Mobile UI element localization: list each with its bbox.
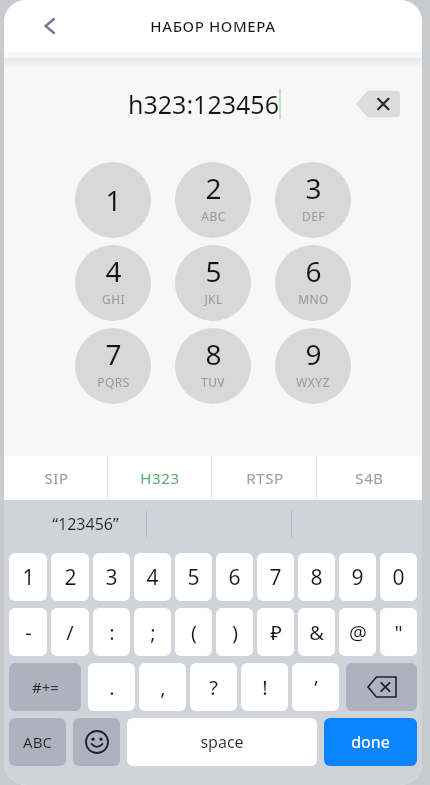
staticText: 4 (105, 252, 122, 290)
button[interactable]: H323 (108, 456, 212, 500)
button[interactable]: ? (190, 663, 237, 711)
staticText: h323:123456 (128, 87, 279, 121)
staticText: JKL (204, 291, 223, 307)
button[interactable]: RTSP (212, 456, 317, 500)
staticText: 6 (305, 252, 322, 290)
staticText: & (309, 619, 324, 646)
staticText: 9 (305, 335, 322, 373)
button[interactable]: ; (134, 608, 171, 656)
button[interactable]: #+= (9, 663, 81, 711)
button[interactable]: & (298, 608, 335, 656)
button[interactable]: 6 (275, 245, 351, 321)
button[interactable]: " (380, 608, 417, 656)
button[interactable]: 8 (298, 553, 335, 601)
staticText: " (394, 619, 403, 646)
staticText: done (351, 731, 390, 753)
staticText: 1 (105, 181, 122, 219)
staticText: TUV (201, 374, 225, 390)
button[interactable]: 8 (175, 328, 251, 404)
staticText: ) (232, 619, 238, 646)
staticText: ABC (201, 208, 226, 224)
button[interactable]: ! (241, 663, 288, 711)
button[interactable]: 3 (93, 553, 130, 601)
staticText: ; (150, 619, 156, 646)
button[interactable]: 4 (134, 553, 171, 601)
button[interactable]: 7 (257, 553, 294, 601)
staticText: 5 (187, 563, 200, 592)
staticText: 7 (269, 563, 282, 592)
button[interactable]: 7 (75, 328, 151, 404)
staticText: - (25, 619, 32, 646)
staticText: WXYZ (296, 374, 330, 390)
button[interactable]: Emoji (73, 718, 120, 766)
staticText: 3 (305, 169, 322, 207)
button[interactable]: 3 (275, 162, 351, 238)
staticText: H323 (140, 468, 180, 488)
staticText: 3 (105, 563, 118, 592)
staticText: #+= (32, 677, 59, 697)
staticText: 8 (310, 563, 323, 592)
staticText: 7 (105, 335, 122, 373)
staticText: 9 (351, 563, 364, 592)
staticText: 6 (228, 563, 241, 592)
button[interactable]: 1 (75, 162, 151, 238)
staticText: MNO (298, 291, 329, 307)
staticText: RTSP (246, 468, 284, 488)
button[interactable]: ABC (9, 718, 66, 766)
staticText: ’ (314, 674, 318, 701)
button[interactable]: , (139, 663, 186, 711)
staticText: : (109, 619, 115, 646)
button[interactable]: ) (216, 608, 253, 656)
button[interactable]: S4B (317, 456, 422, 500)
staticText: space (200, 731, 244, 753)
button[interactable]: ’ (292, 663, 339, 711)
button[interactable]: ( (175, 608, 212, 656)
button[interactable]: 5 (175, 245, 251, 321)
staticText: “123456” (52, 513, 119, 535)
button[interactable]: Clear (356, 89, 400, 119)
button[interactable]: / (51, 608, 89, 656)
staticText: 2 (64, 563, 77, 592)
staticText: S4B (355, 468, 384, 488)
staticText: @ (349, 619, 367, 646)
staticText: SIP (44, 468, 69, 488)
staticText: 1 (22, 563, 35, 592)
button[interactable]: 4 (75, 245, 151, 321)
button[interactable]: 5 (175, 553, 212, 601)
button[interactable]: : (93, 608, 130, 656)
staticText: 4 (146, 563, 159, 592)
button[interactable]: Backspace (346, 663, 417, 711)
staticText: ₽ (270, 619, 282, 646)
staticText: ? (209, 674, 218, 701)
button[interactable]: SIP (4, 456, 108, 500)
button[interactable]: “123456” (24, 500, 146, 548)
staticText: 5 (205, 252, 222, 290)
staticText: DEF (302, 208, 325, 224)
button[interactable]: ₽ (257, 608, 294, 656)
button[interactable]: @ (339, 608, 376, 656)
staticText: , (160, 674, 166, 701)
button[interactable]: 1 (9, 553, 47, 601)
staticText: НАБОР НОМЕРА (150, 16, 276, 36)
button[interactable]: 6 (216, 553, 253, 601)
staticText: GHI (102, 291, 125, 307)
staticText: . (109, 674, 115, 701)
staticText: ( (191, 619, 197, 646)
button[interactable]: 9 (339, 553, 376, 601)
button[interactable]: done (324, 718, 417, 766)
staticText: 8 (205, 335, 222, 373)
button[interactable]: 2 (51, 553, 89, 601)
staticText: ABC (23, 732, 52, 752)
staticText: 2 (205, 169, 222, 207)
button[interactable]: - (9, 608, 47, 656)
button[interactable]: space (127, 718, 317, 766)
button[interactable]: 9 (275, 328, 351, 404)
staticText: 0 (392, 563, 405, 592)
button[interactable]: . (88, 663, 135, 711)
staticText: PQRS (97, 374, 130, 390)
button[interactable]: 0 (380, 553, 417, 601)
button[interactable]: Back (30, 6, 70, 46)
staticText: ! (262, 674, 268, 701)
staticText: / (66, 619, 74, 646)
button[interactable]: 2 (175, 162, 251, 238)
